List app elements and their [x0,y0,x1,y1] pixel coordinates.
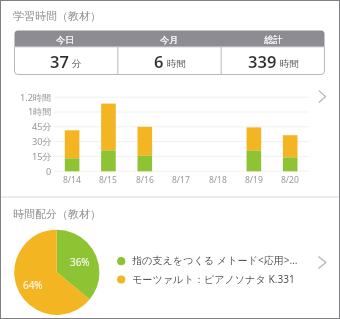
staticText: 総計 [264,34,283,46]
staticText: 64% [23,278,43,291]
staticText: 1.2時間 [20,91,52,104]
staticText: 分 [72,58,82,70]
staticText: 36% [70,255,90,268]
staticText: 0 [46,165,52,178]
staticText: 8/17 [172,174,190,186]
staticText: 8/15 [99,174,117,186]
staticText: 8/16 [136,174,154,186]
staticText: 時間 [167,58,186,70]
staticText: 8/20 [281,174,299,186]
staticText: 339 [248,50,277,72]
staticText: 37 [50,50,69,72]
staticText: 30分 [32,135,52,148]
staticText: 6 [154,50,164,72]
staticText: 時間 [280,58,299,70]
staticText: 今月 [160,34,179,46]
staticText: 8/19 [245,174,263,186]
staticText: モーツァルト：ピアノソナタ K.331 [132,272,295,286]
staticText: 今日 [56,34,75,46]
staticText: 学習時間（教材） [13,9,101,23]
staticText: 8/18 [209,174,227,186]
button[interactable]: Study time details [0,0,340,319]
staticText: 8/14 [63,174,81,186]
staticText: 15分 [32,150,52,163]
staticText: 1時間 [28,105,52,118]
staticText: 指の支えをつくる メトード<応用>… [132,253,298,267]
staticText: 時間配分（教材） [13,207,101,221]
staticText: 45分 [32,120,52,133]
